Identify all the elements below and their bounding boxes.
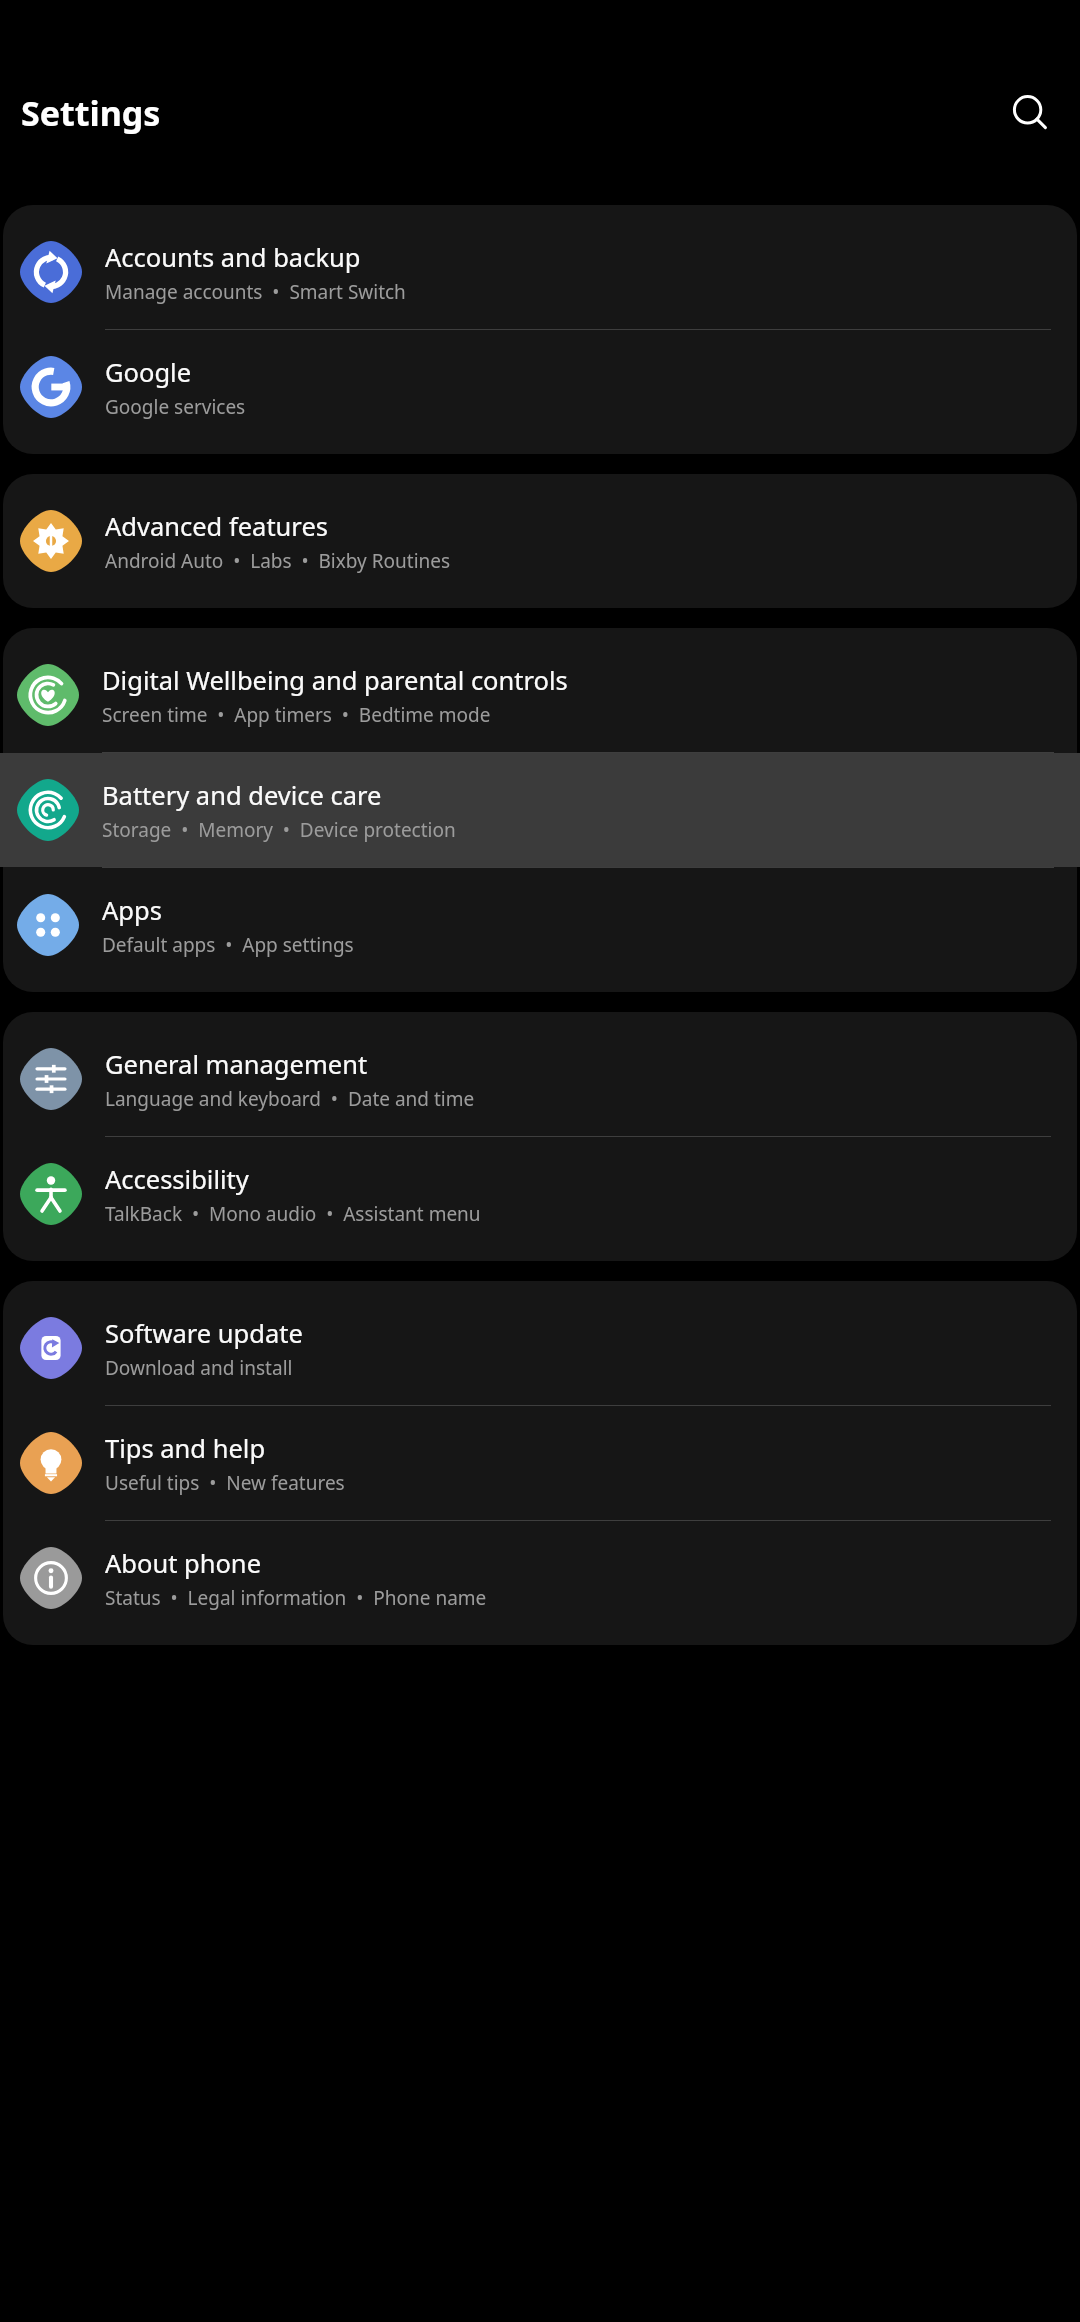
staticText: Apps [102,893,162,928]
button[interactable]: Tips and help [3,1406,1077,1520]
staticText: Android Auto • Labs • Bixby Routines [105,548,451,574]
staticText: Digital Wellbeing and parental controls [102,663,568,698]
button[interactable]: Accounts and backup [3,215,1077,329]
staticText: Tips and help [105,1431,266,1466]
staticText: Advanced features [105,509,328,544]
staticText: Default apps • App settings [102,932,354,958]
staticText: TalkBack • Mono audio • Assistant menu [105,1201,481,1227]
button[interactable]: Advanced features [3,484,1077,598]
staticText: Manage accounts • Smart Switch [105,279,406,305]
staticText: General management [105,1047,368,1082]
staticText: Google [105,355,192,390]
button[interactable]: Battery and device care [0,753,1080,867]
staticText: Screen time • App timers • Bedtime mode [102,702,491,728]
staticText: Accounts and backup [105,240,361,275]
button[interactable]: Search [998,81,1062,145]
button[interactable]: Accessibility [3,1137,1077,1251]
staticText: Battery and device care [102,778,382,813]
button[interactable]: Apps [0,868,1080,982]
staticText: Useful tips • New features [105,1470,345,1496]
button[interactable]: General management [3,1022,1077,1136]
staticText: Storage • Memory • Device protection [102,817,456,843]
staticText: Settings [21,90,161,136]
button[interactable]: Digital Wellbeing and parental controls [0,638,1080,752]
button[interactable]: About phone [3,1521,1077,1635]
staticText: Status • Legal information • Phone name [105,1585,487,1611]
staticText: Accessibility [105,1162,249,1197]
staticText: About phone [105,1546,262,1581]
staticText: Language and keyboard • Date and time [105,1086,475,1112]
button[interactable]: Software update [3,1291,1077,1405]
staticText: Google services [105,394,246,420]
staticText: Download and install [105,1355,293,1381]
staticText: Software update [105,1316,303,1351]
button[interactable]: Google [3,330,1077,444]
